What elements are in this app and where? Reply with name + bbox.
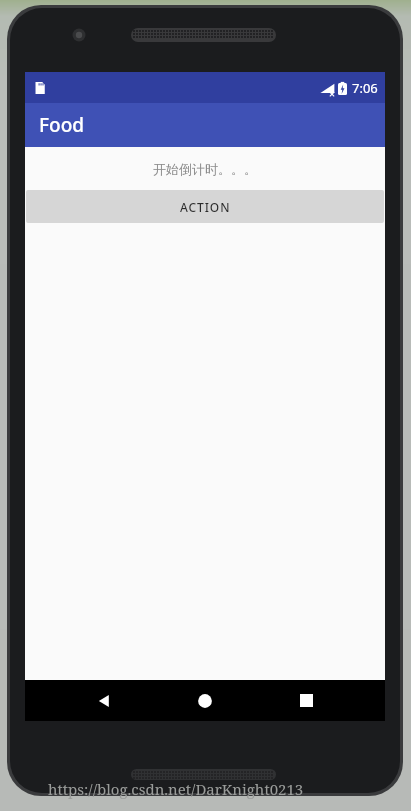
button[interactable]: Recent apps — [284, 680, 328, 721]
staticText: ACTION — [180, 199, 231, 215]
button[interactable]: Back — [82, 680, 126, 721]
button[interactable]: Home — [183, 680, 227, 721]
staticText: https://blog.csdn.net/DarKnight0213 — [48, 779, 304, 799]
staticText: Food — [39, 112, 85, 138]
button[interactable]: ACTION — [26, 190, 384, 223]
staticText: 开始倒计时。。。 — [25, 161, 385, 177]
staticText: 7:06 — [352, 79, 378, 97]
